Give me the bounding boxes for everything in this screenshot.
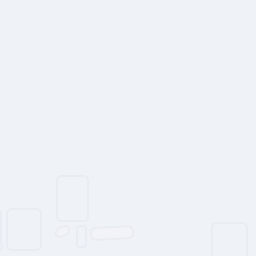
button[interactable]: Marker	[55, 227, 70, 236]
